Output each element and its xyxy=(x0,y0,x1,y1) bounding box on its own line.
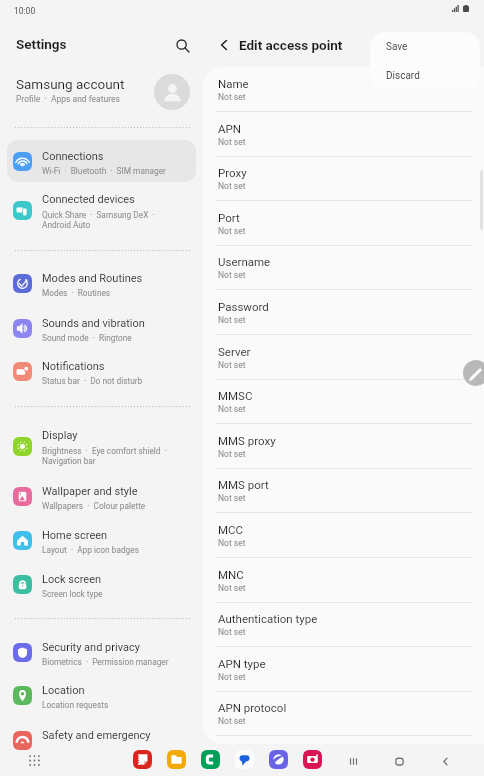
button[interactable]: Back xyxy=(212,33,236,57)
staticText: Server xyxy=(218,345,251,358)
button[interactable]: Authentication type xyxy=(203,602,484,647)
staticText: APN protocol xyxy=(218,701,287,714)
staticText: Security and privacy xyxy=(42,641,140,654)
staticText: Status bar · Do not disturb xyxy=(42,376,143,386)
button[interactable]: recents xyxy=(342,750,364,772)
staticText: Sound mode · Ringtone xyxy=(42,333,132,343)
staticText: Quick Share · Samsung DeX · Android Auto xyxy=(42,210,155,230)
staticText: Display xyxy=(42,429,78,442)
staticText: Not set xyxy=(218,404,246,414)
staticText: Safety and emergency xyxy=(42,729,151,742)
staticText: Not set xyxy=(218,627,246,637)
button[interactable]: Sounds and vibration xyxy=(7,307,196,349)
button[interactable]: files xyxy=(167,750,186,769)
staticText: Wallpaper and style xyxy=(42,485,138,498)
button[interactable]: MMS proxy xyxy=(203,424,484,469)
staticText: Not set xyxy=(218,449,246,459)
staticText: Profile · Apps and features xyxy=(16,94,120,104)
staticText: MCC xyxy=(218,523,244,536)
staticText: Proxy xyxy=(218,166,247,179)
staticText: Not set xyxy=(218,583,246,593)
staticText: Home screen xyxy=(42,529,108,542)
staticText: Layout · App icon badges xyxy=(42,545,139,555)
staticText: Notifications xyxy=(42,360,105,373)
staticText: Port xyxy=(218,211,240,224)
button[interactable]: home xyxy=(388,750,410,772)
button[interactable]: Password xyxy=(203,290,484,335)
button[interactable]: notes xyxy=(133,750,152,769)
staticText: Biometrics · Permission manager xyxy=(42,657,169,667)
button[interactable]: Security and privacy xyxy=(7,631,196,673)
button[interactable]: MNC xyxy=(203,558,484,603)
button[interactable]: Server xyxy=(203,335,484,380)
staticText: APN type xyxy=(218,657,266,670)
staticText: Not set xyxy=(218,315,246,325)
button[interactable]: Save xyxy=(370,32,480,61)
staticText: Modes · Routines xyxy=(42,288,111,298)
staticText: Edit access point xyxy=(239,37,343,53)
button[interactable]: camera xyxy=(303,750,322,769)
button[interactable]: MMSC xyxy=(203,379,484,424)
button[interactable]: Proxy xyxy=(203,156,484,201)
staticText: Not set xyxy=(218,493,246,503)
button[interactable]: APN protocol xyxy=(203,691,484,736)
button[interactable]: Modes and Routines xyxy=(7,262,196,304)
staticText: MMSC xyxy=(218,389,253,402)
staticText: Modes and Routines xyxy=(42,272,143,285)
staticText: Connections xyxy=(42,150,104,163)
button[interactable]: APN xyxy=(203,112,484,157)
staticText: Brightness · Eye comfort shield · Naviga… xyxy=(42,446,167,466)
staticText: Save xyxy=(386,41,408,53)
staticText: Not set xyxy=(218,538,246,548)
staticText: Authentication type xyxy=(218,612,318,625)
staticText: Not set xyxy=(218,672,246,682)
button[interactable]: Name xyxy=(203,67,484,112)
button[interactable]: Safety and emergency xyxy=(7,719,196,761)
staticText: Wallpapers · Colour palette xyxy=(42,501,146,511)
staticText: Not set xyxy=(218,181,246,191)
button[interactable]: internet xyxy=(269,750,288,769)
button[interactable]: Username xyxy=(203,245,484,290)
staticText: MNC xyxy=(218,568,244,581)
staticText: Not set xyxy=(218,716,246,726)
button[interactable]: APN type xyxy=(203,647,484,692)
button[interactable]: MCC xyxy=(203,513,484,558)
button[interactable]: messages xyxy=(235,750,254,769)
staticText: Wi-Fi · Bluetooth · SIM manager xyxy=(42,166,166,176)
button[interactable]: Apps xyxy=(26,752,42,768)
button[interactable]: MMS port xyxy=(203,468,484,513)
staticText: MMS proxy xyxy=(218,434,276,447)
staticText: Lock screen xyxy=(42,573,102,586)
button[interactable]: Wallpaper and style xyxy=(7,475,196,517)
button[interactable]: Lock screen xyxy=(7,563,196,605)
staticText: Settings xyxy=(16,36,67,52)
button[interactable]: Samsung account xyxy=(0,68,203,116)
button[interactable]: Location xyxy=(7,674,196,716)
staticText: Location requests xyxy=(42,700,109,710)
button[interactable]: Display xyxy=(7,420,196,472)
staticText: Samsung account xyxy=(16,76,125,92)
staticText: Not set xyxy=(218,360,246,370)
staticText: Screen lock type xyxy=(42,589,103,599)
staticText: 10:00 xyxy=(14,6,36,16)
button[interactable]: Home screen xyxy=(7,519,196,561)
staticText: Discard xyxy=(386,70,420,82)
button[interactable]: Port xyxy=(203,201,484,246)
button[interactable]: contacts xyxy=(201,750,220,769)
staticText: Password xyxy=(218,300,269,313)
button[interactable]: Discard xyxy=(370,61,480,90)
button[interactable]: Connected devices xyxy=(7,184,196,236)
staticText: Connected devices xyxy=(42,193,135,206)
button[interactable]: Edit xyxy=(463,360,484,386)
staticText: Not set xyxy=(218,92,246,102)
staticText: Name xyxy=(218,77,249,90)
staticText: Not set xyxy=(218,270,246,280)
staticText: Not set xyxy=(218,226,246,236)
button[interactable]: Search xyxy=(170,33,195,58)
staticText: Location xyxy=(42,684,85,697)
staticText: MMS port xyxy=(218,478,269,491)
button[interactable]: Connections xyxy=(7,140,196,182)
button[interactable]: Notifications xyxy=(7,350,196,392)
button[interactable]: back xyxy=(434,750,456,772)
staticText: Not set xyxy=(218,137,246,147)
